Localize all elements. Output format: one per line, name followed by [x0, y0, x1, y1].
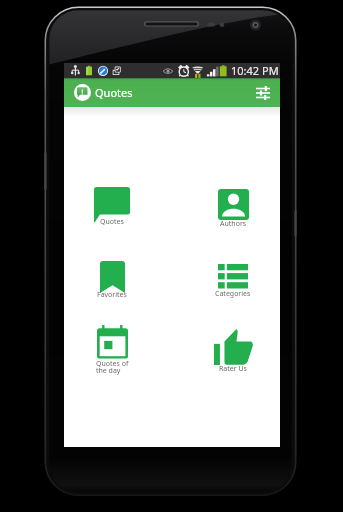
- button[interactable]: Settings: [252, 82, 274, 104]
- button[interactable]: [199, 256, 267, 310]
- button[interactable]: [78, 179, 146, 233]
- staticText: Quotes: [95, 85, 133, 100]
- staticText: 10:42 PM: [231, 63, 279, 78]
- button[interactable]: [78, 317, 146, 371]
- staticText: Authors: [220, 219, 247, 229]
- button[interactable]: [199, 321, 267, 375]
- button[interactable]: [78, 253, 146, 307]
- staticText: Quotes of the day: [96, 359, 129, 376]
- staticText: Rater Us: [219, 364, 247, 374]
- staticText: Favorites: [97, 290, 127, 300]
- button[interactable]: [199, 181, 267, 235]
- staticText: Categories: [215, 289, 251, 299]
- staticText: Quotes: [100, 217, 124, 227]
